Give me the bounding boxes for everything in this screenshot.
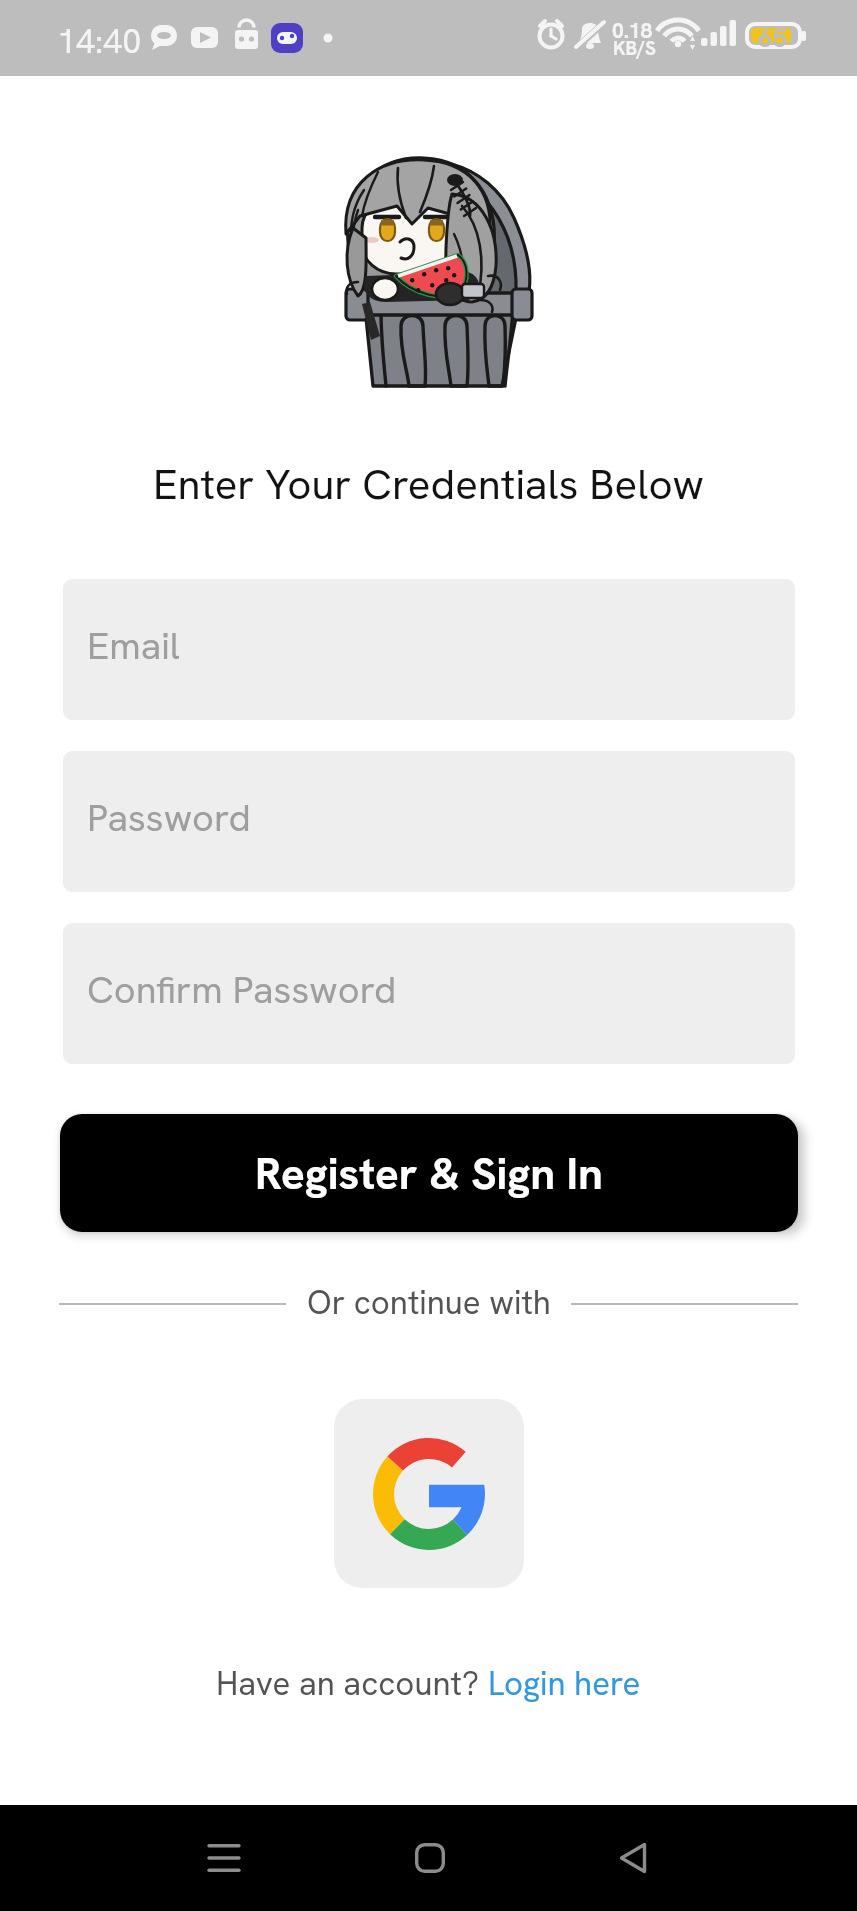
button[interactable]: Confirm Password [63, 923, 795, 1064]
button[interactable]: Recent apps [164, 1805, 284, 1911]
staticText: Enter Your Credentials Below [153, 457, 704, 512]
button[interactable]: Home [370, 1805, 490, 1911]
staticText: Or continue with [307, 1281, 551, 1324]
staticText: Confirm Password [87, 965, 397, 1015]
button[interactable]: Password [63, 751, 795, 892]
button[interactable]: Register & Sign In [60, 1114, 798, 1232]
button[interactable]: Login here [488, 1662, 641, 1705]
staticText: Have an account? [216, 1662, 488, 1705]
button[interactable]: Continue with Google [334, 1399, 524, 1588]
staticText: Email [87, 621, 180, 671]
button[interactable]: Email [63, 579, 795, 720]
button[interactable]: Back [573, 1805, 693, 1911]
staticText: Register & Sign In [255, 1145, 603, 1202]
staticText: 65 [758, 21, 788, 55]
staticText: 14:40 [57, 19, 142, 63]
staticText: 0.18 [612, 17, 653, 44]
staticText: Password [87, 793, 251, 843]
staticText: KB/S [613, 36, 656, 61]
